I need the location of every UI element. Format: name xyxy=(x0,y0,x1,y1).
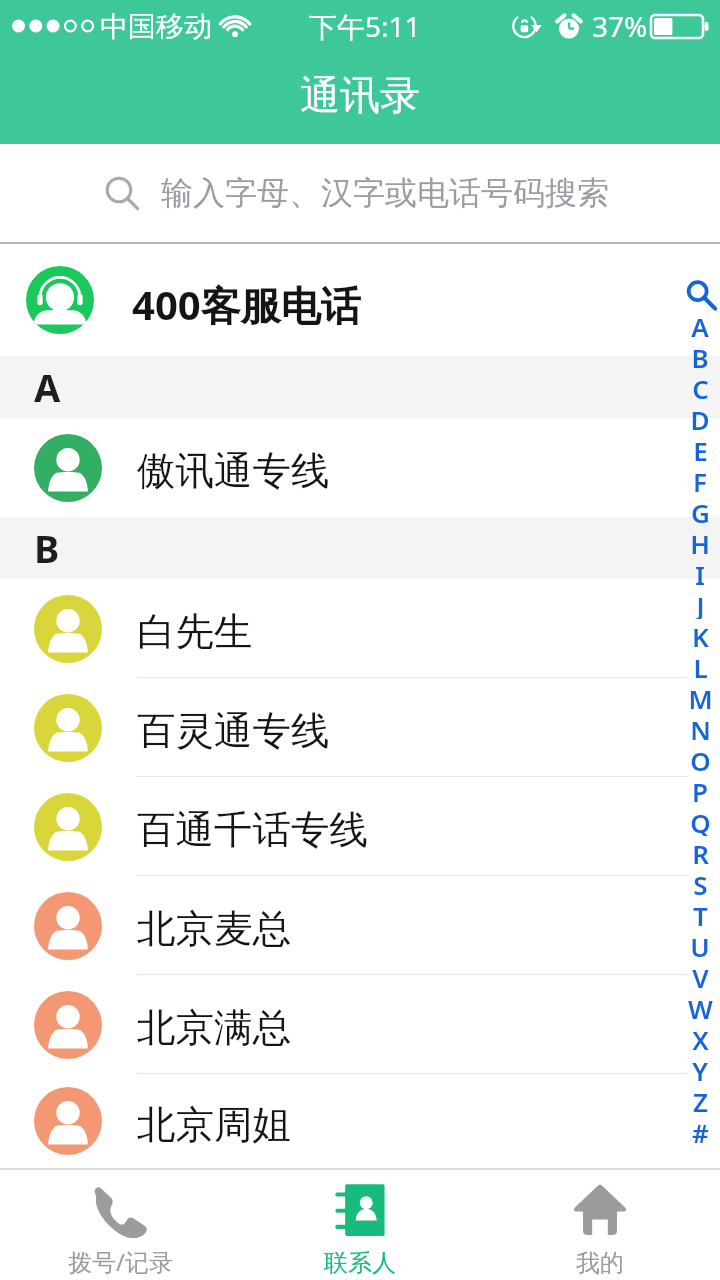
button[interactable]: 白先生 xyxy=(0,579,720,678)
staticText: Y xyxy=(692,1053,708,1084)
staticText: 拨号/记录 xyxy=(68,1245,173,1278)
staticText: L xyxy=(693,650,708,681)
staticText: 北京麦总 xyxy=(137,905,291,954)
staticText: 400客服电话 xyxy=(132,277,361,332)
staticText: F xyxy=(693,464,707,495)
button[interactable]: 400客服电话 xyxy=(0,244,720,356)
staticText: Q xyxy=(690,805,711,836)
button[interactable]: 百通千话专线 xyxy=(0,777,720,876)
staticText: 白先生 xyxy=(137,608,253,657)
staticText: 通讯录 xyxy=(300,70,420,120)
staticText: 37% xyxy=(592,7,648,45)
staticText: 中国移动 xyxy=(100,9,212,44)
staticText: E xyxy=(693,433,708,464)
staticText: 下午5:11 xyxy=(309,7,421,45)
staticText: K xyxy=(692,619,709,650)
staticText: A xyxy=(691,309,709,340)
staticText: 傲讯通专线 xyxy=(137,447,330,496)
staticText: P xyxy=(692,774,708,805)
button[interactable]: Dialer and call log xyxy=(0,1170,240,1280)
staticText: 百灵通专线 xyxy=(137,707,330,756)
button[interactable]: 输入字母、汉字或电话号码搜索 xyxy=(0,144,720,242)
staticText: 输入字母、汉字或电话号码搜索 xyxy=(161,173,609,213)
button[interactable]: 北京周姐 xyxy=(0,1074,720,1168)
staticText: S xyxy=(693,867,708,898)
staticText: I xyxy=(695,557,705,588)
staticText: R xyxy=(692,836,709,867)
staticText: # xyxy=(692,1115,709,1146)
staticText: Z xyxy=(693,1084,708,1115)
staticText: C xyxy=(692,371,709,402)
button[interactable]: Alphabet index xyxy=(680,250,720,1174)
staticText: D xyxy=(690,402,710,433)
staticText: 北京周姐 xyxy=(137,1101,291,1150)
button[interactable]: Profile xyxy=(480,1170,720,1280)
staticText: X xyxy=(692,1022,709,1053)
staticText: B xyxy=(34,522,60,574)
staticText: 百通千话专线 xyxy=(137,806,368,855)
button[interactable]: 北京满总 xyxy=(0,975,720,1074)
staticText: 北京满总 xyxy=(137,1004,291,1053)
staticText: J xyxy=(696,588,705,619)
button[interactable]: 北京麦总 xyxy=(0,876,720,975)
staticText: 联系人 xyxy=(324,1248,396,1278)
staticText: N xyxy=(690,712,711,743)
staticText: G xyxy=(691,495,710,526)
button[interactable]: 傲讯通专线 xyxy=(0,418,720,517)
staticText: A xyxy=(34,361,61,413)
staticText: B xyxy=(691,340,709,371)
staticText: M xyxy=(688,681,713,712)
staticText: T xyxy=(693,898,708,929)
staticText: W xyxy=(688,991,713,1022)
staticText: H xyxy=(690,526,710,557)
staticText: 我的 xyxy=(576,1248,624,1278)
staticText: U xyxy=(690,929,710,960)
button[interactable]: Contacts xyxy=(240,1170,480,1280)
staticText: O xyxy=(690,743,711,774)
staticText: V xyxy=(692,960,709,991)
button[interactable]: 百灵通专线 xyxy=(0,678,720,777)
